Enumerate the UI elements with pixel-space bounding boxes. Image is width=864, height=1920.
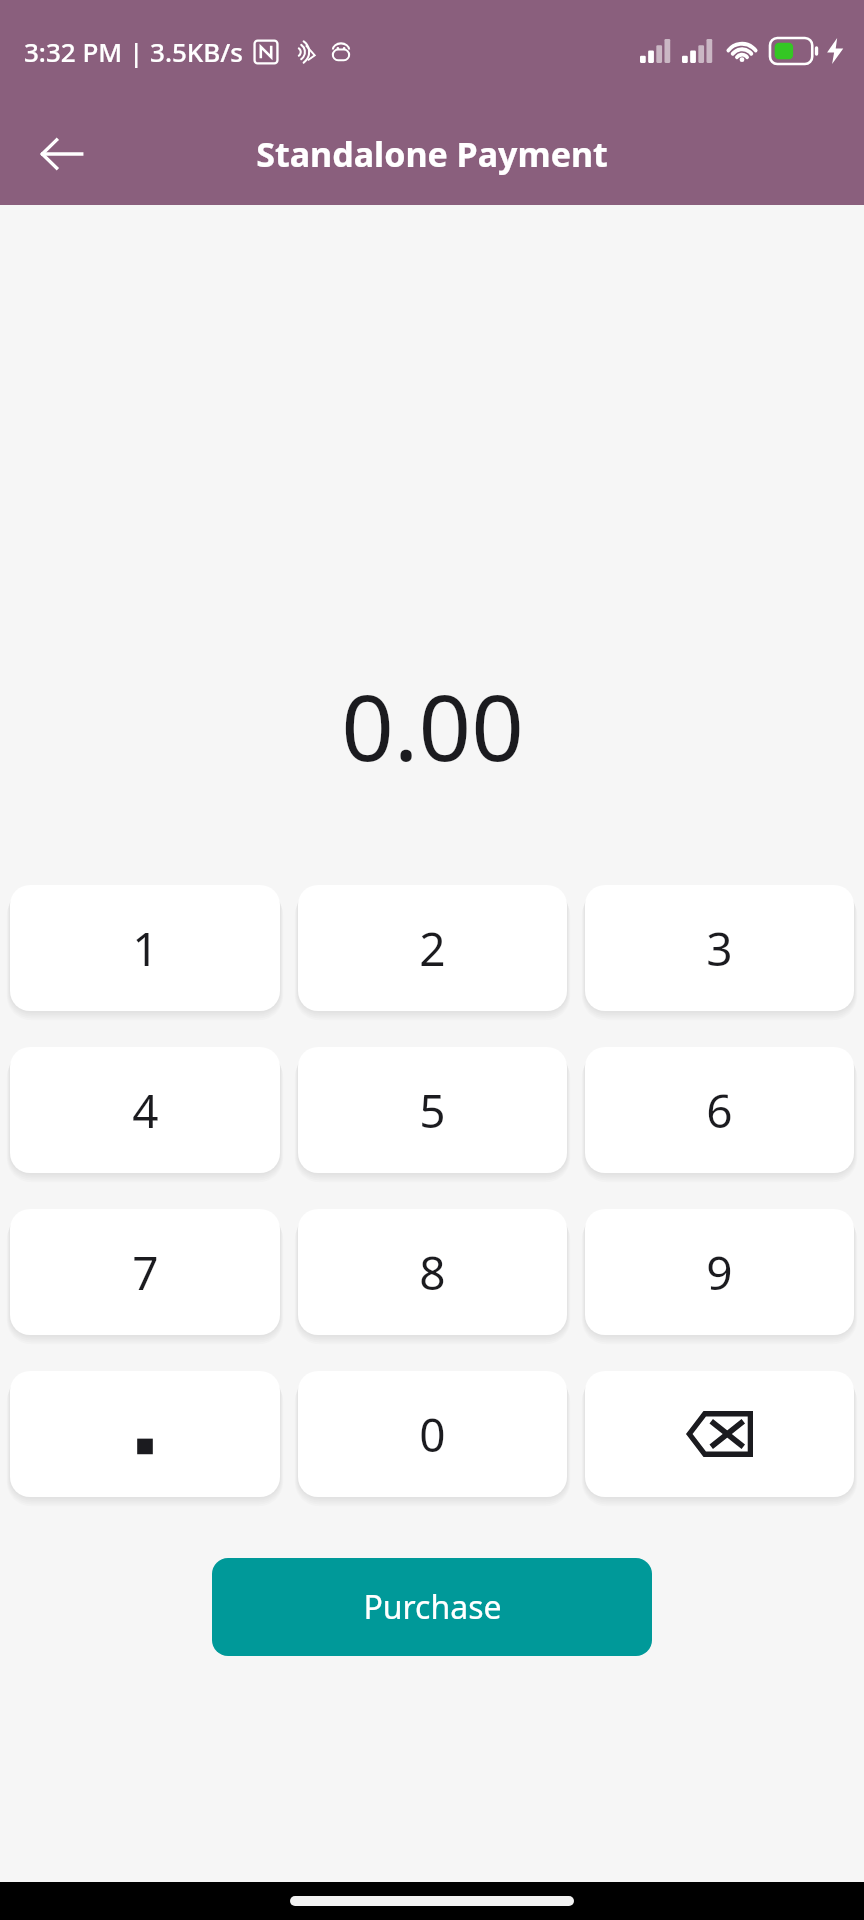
staticText: 3:32 PM | 3.5KB/s xyxy=(24,34,243,69)
button[interactable]: 4 xyxy=(10,1047,280,1173)
staticText: 0 xyxy=(419,1403,446,1466)
staticText: 2 xyxy=(419,917,446,980)
button[interactable]: 5 xyxy=(298,1047,567,1173)
staticText: 1 xyxy=(132,917,159,980)
button[interactable]: Back xyxy=(24,116,100,192)
staticText: 4 xyxy=(132,1079,159,1142)
button[interactable]: 0 xyxy=(298,1371,567,1497)
button[interactable]: 6 xyxy=(585,1047,854,1173)
button[interactable]: 9 xyxy=(585,1209,854,1335)
button[interactable]: 1 xyxy=(10,885,280,1011)
button[interactable]: 8 xyxy=(298,1209,567,1335)
staticText: 8 xyxy=(419,1241,446,1304)
staticText: 9 xyxy=(706,1241,733,1304)
staticText: 5 xyxy=(419,1079,446,1142)
staticText: Standalone Payment xyxy=(256,131,608,177)
button[interactable]: Purchase xyxy=(212,1558,652,1656)
button[interactable]: 3 xyxy=(585,885,854,1011)
button[interactable]: 7 xyxy=(10,1209,280,1335)
button[interactable]: Backspace xyxy=(585,1371,854,1497)
button[interactable] xyxy=(10,1371,280,1497)
button[interactable]: 2 xyxy=(298,885,567,1011)
staticText: Purchase xyxy=(363,1585,502,1629)
staticText: 0.00 xyxy=(341,663,524,788)
staticText: 6 xyxy=(706,1079,733,1142)
staticText: 3 xyxy=(706,917,733,980)
staticText: 7 xyxy=(132,1241,159,1304)
